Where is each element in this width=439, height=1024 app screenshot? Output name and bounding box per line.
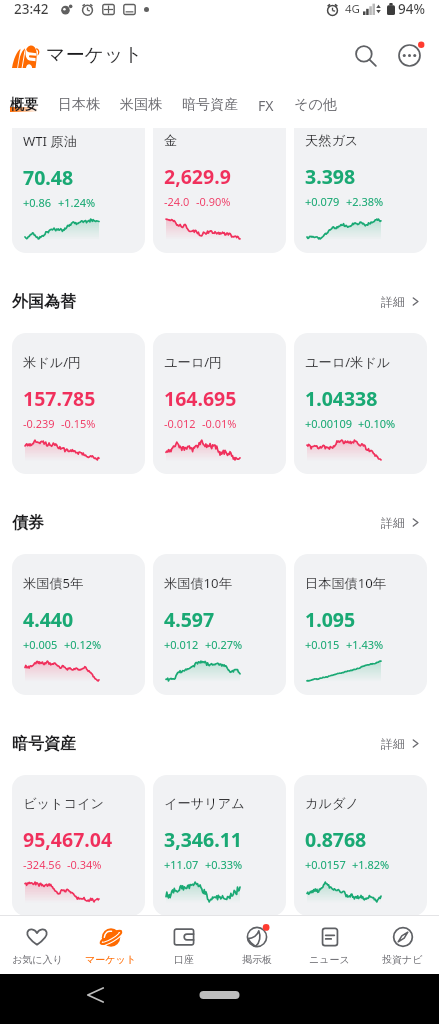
button[interactable]: イーサリアム xyxy=(153,775,286,915)
staticText: +0.015 xyxy=(305,637,340,652)
staticText: 投資ナビ xyxy=(382,953,423,966)
staticText: 164.695 xyxy=(164,385,237,412)
staticText: -0.01% xyxy=(202,416,237,431)
button[interactable]: マーケット xyxy=(74,919,147,972)
staticText: 掲示板 xyxy=(242,953,272,966)
staticText: 米国株 xyxy=(120,96,162,114)
staticText: +0.10% xyxy=(358,416,396,431)
staticText: WTI 原油 xyxy=(23,132,77,150)
staticText: 70.48 xyxy=(23,164,74,191)
button[interactable]: 日本国債10年 xyxy=(294,554,427,695)
staticText: 95,467.04 xyxy=(23,826,113,853)
staticText: 米国債5年 xyxy=(23,574,84,592)
staticText: ユーロ/米ドル xyxy=(305,353,391,371)
staticText: 詳細 xyxy=(381,294,405,309)
staticText: 23:42 xyxy=(14,0,49,18)
staticText: 2,629.9 xyxy=(164,163,231,190)
button[interactable]: 暗号資産 xyxy=(172,82,248,128)
button[interactable]: Search xyxy=(343,33,387,77)
staticText: マーケット xyxy=(46,43,143,67)
staticText: 暗号資産 xyxy=(12,734,76,754)
staticText: 4.440 xyxy=(23,606,74,633)
staticText: その他 xyxy=(294,96,337,114)
staticText: +0.079 xyxy=(305,194,340,209)
staticText: 概要 xyxy=(10,96,38,114)
staticText: 日本株 xyxy=(58,96,100,114)
staticText: +0.012 xyxy=(164,637,199,652)
button[interactable]: ニュース xyxy=(293,919,366,972)
staticText: +1.82% xyxy=(352,857,390,872)
button[interactable]: 天然ガス xyxy=(294,128,427,253)
staticText: 詳細 xyxy=(381,736,405,751)
button[interactable]: カルダノ xyxy=(294,775,427,915)
staticText: 米国債10年 xyxy=(164,574,232,592)
staticText: 日本国債10年 xyxy=(305,574,387,592)
staticText: -0.90% xyxy=(196,194,231,209)
staticText: +1.24% xyxy=(58,195,96,210)
button[interactable]: FX xyxy=(248,82,284,128)
button[interactable]: WTI 原油 xyxy=(12,128,145,253)
staticText: FX xyxy=(258,96,274,115)
button[interactable]: ユーロ/円 xyxy=(153,333,286,474)
staticText: 金 xyxy=(164,132,178,149)
staticText: カルダノ xyxy=(305,795,359,812)
staticText: 0.8768 xyxy=(305,826,367,853)
button[interactable]: 投資ナビ xyxy=(366,919,439,972)
staticText: +11.07 xyxy=(164,857,199,872)
staticText: +0.33% xyxy=(205,857,243,872)
staticText: -0.15% xyxy=(61,416,96,431)
staticText: 債券 xyxy=(12,513,44,533)
staticText: +0.005 xyxy=(23,637,58,652)
staticText: -324.56 xyxy=(23,857,61,872)
button[interactable]: 米国株 xyxy=(110,82,172,128)
staticText: 米ドル/円 xyxy=(23,353,82,371)
button[interactable]: その他 xyxy=(284,82,347,128)
staticText: -0.239 xyxy=(23,416,55,431)
button[interactable]: 金 xyxy=(153,128,286,253)
button[interactable]: 日本株 xyxy=(48,82,110,128)
staticText: +0.27% xyxy=(205,637,243,652)
button[interactable]: 米ドル/円 xyxy=(12,333,145,474)
button[interactable]: 詳細 xyxy=(375,730,427,757)
button[interactable]: ビットコイン xyxy=(12,775,145,915)
staticText: -0.012 xyxy=(164,416,196,431)
staticText: +2.38% xyxy=(346,194,384,209)
staticText: ニュース xyxy=(309,953,350,966)
staticText: イーサリアム xyxy=(164,795,245,812)
button[interactable]: 詳細 xyxy=(375,509,427,536)
button[interactable]: 概要 xyxy=(0,82,48,128)
staticText: 3.398 xyxy=(305,163,356,190)
staticText: ユーロ/円 xyxy=(164,353,223,371)
button[interactable]: 口座 xyxy=(147,919,220,972)
staticText: 外国為替 xyxy=(12,292,76,312)
staticText: +0.12% xyxy=(64,637,102,652)
staticText: お気に入り xyxy=(12,953,63,966)
staticText: 4.597 xyxy=(164,606,215,633)
staticText: +0.86 xyxy=(23,195,52,210)
staticText: 1.04338 xyxy=(305,385,378,412)
staticText: -0.34% xyxy=(67,857,102,872)
button[interactable]: お気に入り xyxy=(0,919,74,972)
button[interactable]: 掲示板 xyxy=(220,919,293,972)
staticText: マーケット xyxy=(85,953,136,966)
staticText: 天然ガス xyxy=(305,132,359,149)
staticText: +1.43% xyxy=(346,637,384,652)
button[interactable]: More options xyxy=(387,33,431,77)
button[interactable]: 詳細 xyxy=(375,288,427,315)
staticText: 1.095 xyxy=(305,606,356,633)
staticText: 94% xyxy=(398,0,425,18)
staticText: 口座 xyxy=(174,953,194,966)
staticText: 暗号資産 xyxy=(182,96,238,114)
button[interactable]: 米国債10年 xyxy=(153,554,286,695)
button[interactable]: ユーロ/米ドル xyxy=(294,333,427,474)
staticText: -24.0 xyxy=(164,194,190,209)
staticText: +0.0157 xyxy=(305,857,346,872)
staticText: 4G xyxy=(345,1,360,17)
button[interactable]: 米国債5年 xyxy=(12,554,145,695)
staticText: +0.00109 xyxy=(305,416,352,431)
staticText: 3,346.11 xyxy=(164,826,242,853)
staticText: 157.785 xyxy=(23,385,96,412)
staticText: ビットコイン xyxy=(23,795,104,812)
staticText: 詳細 xyxy=(381,515,405,530)
